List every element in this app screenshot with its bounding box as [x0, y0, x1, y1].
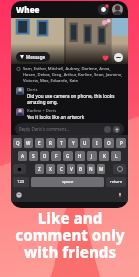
staticText: return: [110, 179, 123, 185]
staticText: H: [78, 153, 82, 159]
button[interactable]: F: [51, 151, 61, 161]
button[interactable]: return: [106, 177, 126, 187]
staticText: U: [83, 140, 87, 146]
button[interactable]: G: [63, 151, 73, 161]
button[interactable]: P: [116, 138, 126, 148]
staticText: F: [55, 153, 58, 159]
staticText: I: [96, 140, 98, 146]
staticText: Deris: [27, 87, 38, 93]
staticText: A: [21, 153, 25, 159]
button[interactable]: Voice input: [117, 192, 123, 198]
button[interactable]: X: [46, 164, 55, 174]
button[interactable]: Camera: [104, 126, 111, 133]
button[interactable]: H: [75, 151, 85, 161]
staticText: C: [60, 166, 63, 172]
button[interactable]: [13, 164, 26, 174]
button[interactable]: Q: [13, 138, 22, 148]
staticText: T: [60, 140, 63, 146]
button[interactable]: R: [46, 138, 55, 148]
button[interactable]: I: [92, 138, 102, 148]
button[interactable]: Like: [101, 53, 110, 62]
staticText: S: [32, 153, 35, 159]
button[interactable]: M: [97, 164, 105, 174]
staticText: Reply Deris's comment...: [19, 126, 70, 132]
staticText: W: [26, 140, 31, 146]
staticText: K: [103, 153, 106, 159]
staticText: Whee: [16, 4, 40, 15]
staticText: B: [79, 166, 83, 172]
staticText: space: [62, 179, 74, 185]
staticText: Yes it looks like an artwork: [27, 114, 85, 120]
button[interactable]: T: [57, 138, 66, 148]
button[interactable]: Message: [20, 54, 46, 60]
button[interactable]: Reply Deris's comment...: [19, 123, 120, 135]
button[interactable]: C: [57, 164, 65, 174]
button[interactable]: N: [87, 164, 95, 174]
staticText: Message: [26, 54, 46, 60]
button[interactable]: Z: [35, 164, 44, 174]
button[interactable]: Y: [68, 138, 78, 148]
staticText: G: [66, 153, 70, 159]
staticText: Did you use camera on phone, this looks …: [27, 93, 115, 105]
button[interactable]: E: [35, 138, 44, 148]
staticText: E: [38, 140, 41, 146]
button[interactable]: Delete: [113, 164, 126, 174]
staticText: Z: [38, 166, 41, 172]
button[interactable]: V: [67, 164, 75, 174]
staticText: M: [99, 166, 104, 172]
staticText: O: [107, 140, 111, 146]
staticText: V: [70, 166, 73, 172]
button[interactable]: Emoji: [16, 192, 22, 198]
button[interactable]: O: [104, 138, 114, 148]
staticText: P: [120, 140, 123, 146]
staticText: • Deris: [42, 108, 57, 114]
staticText: X: [49, 166, 52, 172]
button[interactable]: J: [87, 151, 97, 161]
button[interactable]: 123: [13, 177, 29, 187]
button[interactable]: A: [18, 151, 27, 161]
staticText: R: [49, 140, 52, 146]
button[interactable]: Notifications: [98, 4, 109, 15]
staticText: L: [115, 153, 118, 159]
staticText: Like and comment only with friends: [15, 208, 125, 263]
staticText: 123: [17, 179, 25, 185]
button[interactable]: L: [111, 151, 121, 161]
button[interactable]: Profile: [112, 4, 123, 15]
button[interactable]: S: [29, 151, 38, 161]
button[interactable]: Send: [113, 126, 120, 133]
button[interactable]: space: [31, 177, 104, 187]
button[interactable]: D: [40, 151, 49, 161]
button[interactable]: K: [99, 151, 109, 161]
staticText: J: [91, 153, 93, 159]
staticText: Q: [16, 140, 20, 146]
staticText: N: [89, 166, 93, 172]
staticText: Y: [72, 140, 75, 146]
button[interactable]: W: [24, 138, 33, 148]
button[interactable]: B: [77, 164, 85, 174]
button[interactable]: U: [80, 138, 90, 148]
staticText: Sam, Esther, Mitchell, Aubrey, Darlene, …: [23, 66, 123, 84]
staticText: D: [43, 153, 47, 159]
staticText: Karline: [27, 108, 42, 114]
button[interactable]: More: [114, 53, 123, 62]
